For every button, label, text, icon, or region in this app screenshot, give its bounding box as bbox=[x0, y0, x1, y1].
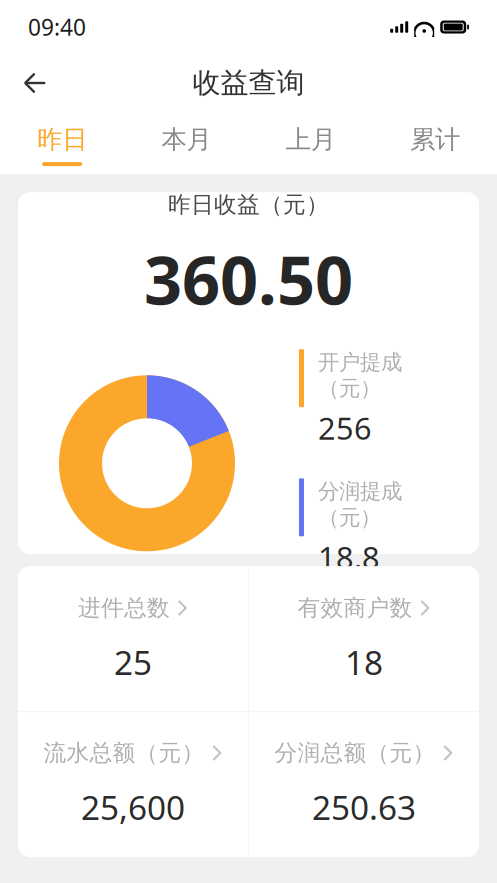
staticText: 进件总数 bbox=[78, 594, 170, 622]
button[interactable]: 有效商户数 bbox=[249, 567, 479, 711]
staticText: 分润总额（元） bbox=[274, 739, 435, 767]
staticText: 250.63 bbox=[312, 785, 416, 829]
staticText: 开户提成（元） bbox=[318, 349, 402, 402]
button[interactable]: 分润总额（元） bbox=[249, 712, 479, 856]
staticText: 256 bbox=[318, 408, 372, 448]
staticText: 收益查询 bbox=[192, 66, 304, 100]
button[interactable]: 流水总额（元） bbox=[18, 712, 248, 856]
staticText: 累计 bbox=[410, 124, 460, 155]
button[interactable]: 本月 bbox=[124, 112, 248, 174]
button[interactable]: 返回 bbox=[12, 60, 58, 106]
staticText: 360.50 bbox=[144, 235, 353, 323]
button[interactable]: 累计 bbox=[373, 112, 497, 174]
staticText: 昨日收益（元） bbox=[168, 191, 329, 219]
staticText: 有效商户数 bbox=[297, 594, 412, 622]
staticText: 本月 bbox=[161, 124, 211, 155]
staticText: 18 bbox=[345, 640, 383, 684]
staticText: 18.8 bbox=[318, 537, 380, 577]
staticText: 分润提成（元） bbox=[318, 478, 402, 531]
button[interactable]: 昨日 bbox=[0, 112, 124, 174]
staticText: 上月 bbox=[286, 124, 336, 155]
staticText: 昨日 bbox=[37, 124, 87, 155]
staticText: 09:40 bbox=[28, 12, 86, 42]
button[interactable]: 上月 bbox=[248, 112, 373, 174]
staticText: 流水总额（元） bbox=[43, 739, 204, 767]
staticText: 25,600 bbox=[81, 785, 185, 829]
staticText: 25 bbox=[114, 640, 152, 684]
button[interactable]: 进件总数 bbox=[18, 567, 248, 711]
